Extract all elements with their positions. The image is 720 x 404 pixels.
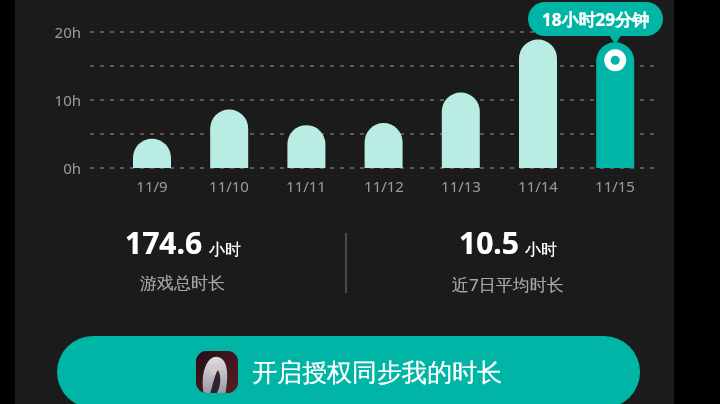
staticText: 小时 xyxy=(525,240,557,260)
staticText: 11/9 xyxy=(112,176,192,196)
staticText: 游戏总时长 xyxy=(140,273,225,294)
staticText: 11/11 xyxy=(266,176,346,196)
other: 游戏图标 xyxy=(196,351,238,393)
button[interactable]: 游戏图标 xyxy=(57,336,640,404)
staticText: 174.6 xyxy=(125,222,203,263)
staticText: 20h xyxy=(25,22,81,42)
button[interactable]: 10.5 xyxy=(360,222,655,296)
staticText: 小时 xyxy=(209,240,241,260)
staticText: 10h xyxy=(25,90,81,110)
staticText: 0h xyxy=(25,158,81,178)
staticText: 开启授权同步我的时长 xyxy=(252,357,502,388)
button[interactable]: 174.6 xyxy=(35,222,330,294)
staticText: 18小时29分钟 xyxy=(542,8,649,31)
staticText: 11/14 xyxy=(498,176,578,196)
staticText: 11/13 xyxy=(421,176,501,196)
staticText: 11/10 xyxy=(189,176,269,196)
staticText: 11/12 xyxy=(344,176,424,196)
staticText: 10.5 xyxy=(459,222,519,263)
staticText: 11/15 xyxy=(575,176,655,196)
staticText: 近7日平均时长 xyxy=(452,273,564,296)
